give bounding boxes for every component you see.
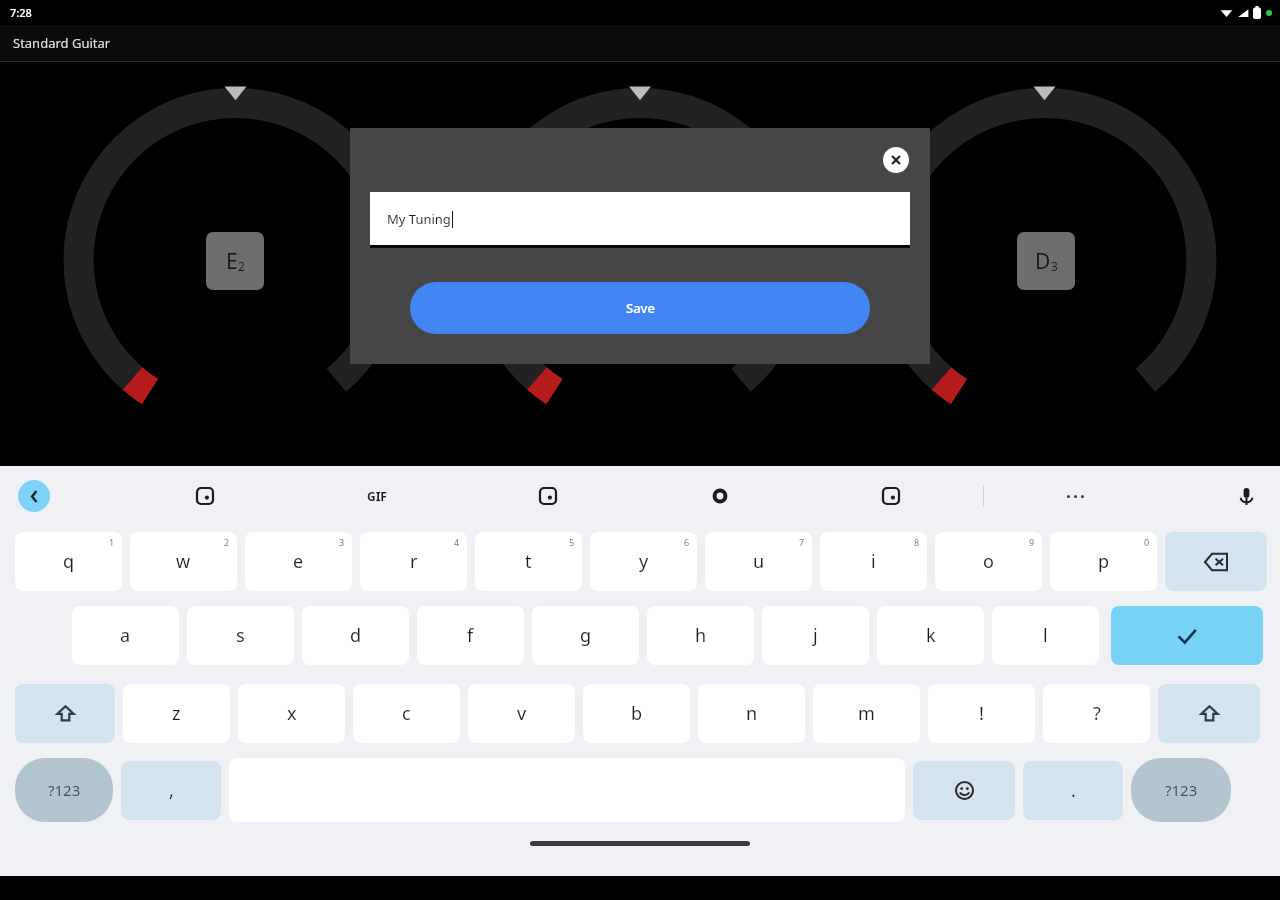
staticText: 7:28 [10,5,32,20]
staticText: Save [626,299,655,317]
staticText: u [753,549,765,574]
button[interactable]: Back [18,480,50,512]
staticText: i [871,549,876,574]
button[interactable]: GIF [360,479,394,513]
staticText: 2 [224,536,230,548]
button[interactable]: s [187,606,294,665]
staticText: y [639,549,649,574]
staticText: 9 [1029,536,1035,548]
staticText: t [525,549,532,574]
staticText: p [1098,549,1110,574]
button[interactable]: Settings [703,479,737,513]
button[interactable]: Enter [1111,606,1263,665]
button[interactable]: t [475,532,582,591]
button[interactable]: n [698,684,805,743]
button[interactable]: Backspace [1165,532,1267,591]
staticText: c [402,701,411,726]
button[interactable]: E [206,232,264,290]
staticText: 6 [684,536,690,548]
staticText: n [746,701,758,726]
button[interactable]: r [360,532,467,591]
staticText: 0 [1144,536,1150,548]
staticText: h [695,623,707,648]
button[interactable]: ?123 [15,758,113,822]
button[interactable]: f [417,606,524,665]
button[interactable]: My Tuning [370,192,910,245]
staticText: a [120,623,131,648]
staticText: My Tuning [387,210,451,228]
staticText: l [1043,623,1048,648]
button[interactable]: D [1017,232,1075,290]
button[interactable]: k [877,606,984,665]
staticText: 3 [1051,258,1058,274]
staticText: Standard Guitar [13,34,111,52]
button[interactable]: u [705,532,812,591]
staticText: f [467,623,474,648]
staticText: d [350,623,362,648]
staticText: ! [979,701,984,726]
button[interactable]: a [72,606,179,665]
button[interactable]: Themes [874,479,908,513]
staticText: r [410,549,418,574]
staticText: o [983,549,994,574]
staticText: m [858,701,875,726]
staticText: ? [1093,701,1101,726]
button[interactable]: ?123 [1131,758,1231,822]
staticText: GIF [367,488,387,504]
button[interactable]: More [1058,479,1092,513]
button[interactable]: Voice input [1229,479,1263,513]
staticText: 3 [339,536,345,548]
staticText: , [169,778,174,803]
button[interactable]: o [935,532,1042,591]
button[interactable]: v [468,684,575,743]
staticText: q [63,549,75,574]
staticText: g [580,623,592,648]
staticText: 2 [238,258,245,274]
button[interactable]: Shift [1158,684,1260,743]
button[interactable]: Save [410,282,870,334]
button[interactable]: ! [928,684,1035,743]
staticText: 1 [109,536,115,548]
staticText: . [1071,778,1076,803]
button[interactable]: l [992,606,1099,665]
staticText: ?123 [48,780,81,800]
button[interactable]: . [1023,761,1123,820]
staticText: e [293,549,304,574]
button[interactable]: d [302,606,409,665]
button[interactable]: Shift [15,684,115,743]
staticText: 7 [799,536,805,548]
button[interactable]: Stickers [188,479,222,513]
button[interactable]: Close [883,147,909,173]
button[interactable]: Translate [531,479,565,513]
button[interactable]: i [820,532,927,591]
button[interactable]: w [130,532,237,591]
staticText: 8 [914,536,920,548]
staticText: ?123 [1165,780,1198,800]
button[interactable]: q [15,532,122,591]
button[interactable]: b [583,684,690,743]
button[interactable]: , [121,761,221,820]
button[interactable]: h [647,606,754,665]
button[interactable]: p [1050,532,1157,591]
button[interactable]: m [813,684,920,743]
button[interactable]: y [590,532,697,591]
button[interactable]: g [532,606,639,665]
staticText: w [176,549,191,574]
staticText: 4 [454,536,460,548]
staticText: z [172,701,181,726]
staticText: 5 [569,536,575,548]
button[interactable]: j [762,606,869,665]
button[interactable]: ? [1043,684,1150,743]
button[interactable]: e [245,532,352,591]
button[interactable]: x [238,684,345,743]
staticText: v [517,701,527,726]
staticText: D [1035,247,1051,276]
staticText: k [926,623,936,648]
staticText: x [287,701,297,726]
staticText: j [813,623,818,648]
button[interactable]: c [353,684,460,743]
staticText: s [236,623,245,648]
button[interactable]: Emoji [913,761,1015,820]
button[interactable]: z [123,684,230,743]
